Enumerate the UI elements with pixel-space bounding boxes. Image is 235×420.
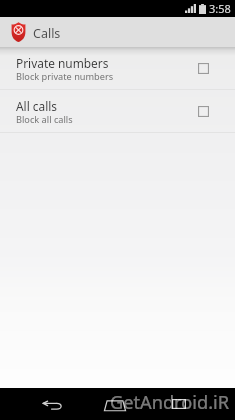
button[interactable]: Private numbers — [0, 47, 235, 89]
staticText: Private numbers — [16, 55, 109, 71]
button[interactable]: Private numbers — [192, 57, 214, 79]
staticText: 3:58 — [209, 1, 231, 16]
staticText: Block all calls — [16, 113, 73, 126]
button[interactable]: Back — [36, 388, 68, 420]
button[interactable]: All calls — [0, 90, 235, 132]
button[interactable]: All calls — [192, 100, 214, 122]
staticText: Block private numbers — [16, 70, 114, 83]
button[interactable]: Recent apps — [163, 388, 195, 420]
staticText: GetAndroid.iR — [110, 390, 230, 415]
staticText: All calls — [16, 98, 58, 114]
button[interactable]: Home — [99, 388, 131, 420]
staticText: Calls — [33, 25, 61, 42]
